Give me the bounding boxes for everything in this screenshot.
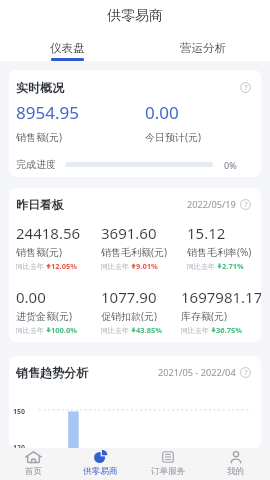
staticText: 24418.56 [16,223,81,243]
staticText: 43.85% [136,325,163,335]
staticText: 36.75% [216,325,243,335]
staticText: 同比去年 [181,326,209,335]
button[interactable]: 订单服务 [134,448,202,480]
staticText: 0% [224,159,237,171]
staticText: 9.01% [136,261,158,271]
staticText: 首页 [25,466,43,477]
staticText: 销售额(元) [16,130,62,144]
staticText: 同比去年 [16,326,44,335]
button[interactable]: Help [240,82,251,93]
staticText: 150 [13,407,26,417]
staticText: 供零易商 [107,7,163,25]
staticText: 销售额(元) [16,245,62,259]
staticText: 100.0% [51,325,78,335]
staticText: 实时概况 [16,80,64,95]
staticText: 0.00 [145,101,179,124]
staticText: ? [244,83,248,93]
staticText: 销售趋势分析 [16,365,88,380]
button[interactable]: 营运分析 [135,31,270,61]
staticText: 2.71% [222,261,244,271]
staticText: ? [244,200,248,210]
staticText: ? [244,368,248,378]
staticText: 供零易商 [83,466,118,477]
staticText: 昨日看板 [16,197,64,212]
staticText: 促销扣款(元) [101,309,157,323]
staticText: 8954.95 [16,101,79,124]
staticText: 2021/05 - 2022/04 [158,366,236,379]
staticText: 同比去年 [101,262,129,271]
button[interactable]: Help [240,199,251,210]
staticText: 同比去年 [101,326,129,335]
button[interactable]: 供零易商 [67,448,134,480]
staticText: 完成进度 [16,158,56,171]
staticText: 我的 [227,466,245,477]
staticText: 1697981.17 [181,287,261,307]
staticText: 进货金额(元) [16,309,72,323]
button[interactable]: 我的 [202,448,270,480]
staticText: 库存额(元) [181,309,227,323]
staticText: 同比去年 [187,262,215,271]
staticText: 15.12 [187,223,226,243]
staticText: 1077.90 [101,287,157,307]
staticText: 同比去年 [16,262,44,271]
staticText: 120 [13,443,26,448]
staticText: 今日预计(元) [145,130,201,144]
staticText: 0.00 [16,287,46,307]
staticText: 3691.60 [101,223,157,243]
button[interactable]: 仪表盘 [0,31,135,61]
staticText: 销售毛利率(%) [187,245,252,259]
staticText: 2022/05/19 [187,198,236,211]
staticText: 订单服务 [151,466,186,477]
button[interactable]: Help [240,367,251,378]
staticText: 12.05% [51,261,78,271]
button[interactable]: 首页 [0,448,67,480]
staticText: 营运分析 [180,41,226,55]
staticText: 仪表盘 [50,41,85,55]
staticText: 销售毛利额(元) [101,245,167,259]
